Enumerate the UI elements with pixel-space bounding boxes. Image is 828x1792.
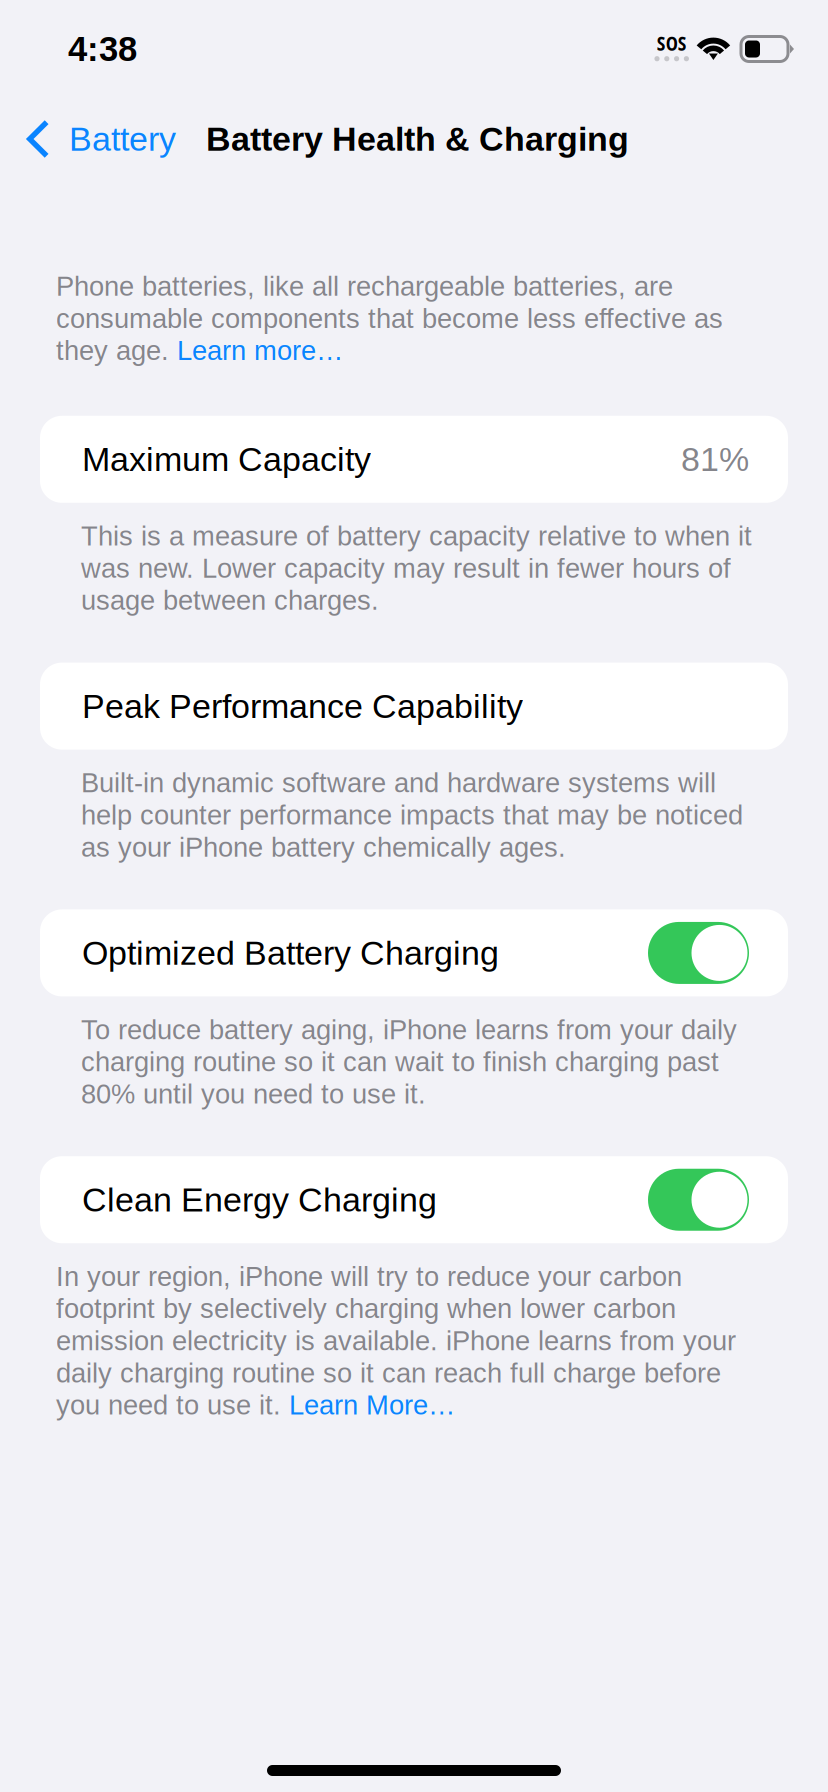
button[interactable]: Battery bbox=[0, 99, 188, 179]
button[interactable]: Clean Energy Charging bbox=[0, 1156, 828, 1243]
staticText: To reduce battery aging, iPhone learns f… bbox=[81, 1014, 737, 1109]
button[interactable]: Peak Performance Capability bbox=[0, 663, 828, 750]
staticText: In your region, iPhone will try to reduc… bbox=[56, 1261, 736, 1420]
button[interactable]: Optimized Battery Charging bbox=[0, 909, 828, 996]
staticText: Maximum Capacity bbox=[82, 440, 371, 478]
staticText: SOS bbox=[657, 31, 687, 56]
staticText: Clean Energy Charging bbox=[82, 1181, 437, 1219]
staticText: 4:38 bbox=[68, 30, 137, 68]
staticText: Built-in dynamic software and hardware s… bbox=[81, 768, 743, 862]
staticText: Peak Performance Capability bbox=[82, 687, 523, 725]
staticText: Battery Health & Charging bbox=[206, 120, 629, 158]
button[interactable]: Maximum Capacity bbox=[0, 416, 828, 503]
staticText: 81% bbox=[681, 440, 749, 478]
staticText: This is a measure of battery capacity re… bbox=[81, 521, 752, 616]
staticText: Phone batteries, like all rechargeable b… bbox=[56, 271, 723, 366]
staticText: Optimized Battery Charging bbox=[82, 934, 499, 972]
staticText: Battery bbox=[69, 120, 176, 158]
